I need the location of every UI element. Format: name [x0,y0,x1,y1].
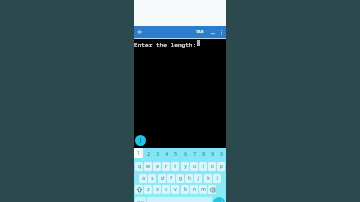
button[interactable]: 3 [153,150,161,159]
button[interactable]: Hide keyboard [208,26,217,38]
button[interactable]: f [167,174,175,183]
button[interactable]: l [213,174,221,183]
staticText: 5 [174,151,177,158]
button[interactable]: w [144,162,152,171]
staticText: g [179,175,182,182]
button[interactable]: v [171,185,179,194]
button[interactable]: n [190,185,198,194]
staticText: b [184,186,187,193]
staticText: 9 [211,151,214,158]
button[interactable]: u [190,162,198,171]
button[interactable]: j [194,174,202,183]
button[interactable]: Back [134,26,146,38]
button[interactable] [135,150,143,159]
button[interactable]: 1 [134,148,143,158]
button[interactable]: o [208,162,216,171]
button[interactable]: i [199,162,207,171]
staticText: ?123 [137,200,145,202]
button[interactable] [135,185,143,194]
staticText: t [174,163,176,170]
staticText: 3 [156,151,159,158]
staticText: f [170,175,172,182]
button[interactable]: 2 [144,150,152,159]
staticText: x [156,186,159,193]
staticText: v [174,186,177,193]
staticText: k [207,175,210,182]
staticText: q [138,163,141,170]
button[interactable]: More options [217,26,225,38]
button[interactable]: TAB [195,26,205,38]
button[interactable]: z [144,185,152,194]
staticText: 7 [193,151,196,158]
button[interactable]: e [153,162,161,171]
button[interactable]: 5 [171,150,179,159]
button[interactable]: q [135,162,143,171]
button[interactable]: Enter [213,197,225,202]
staticText: 2 [147,151,150,158]
staticText: i [202,163,204,170]
button[interactable]: 8 [199,150,207,159]
button[interactable]: Backspace [208,185,216,194]
button[interactable]: c [162,185,170,194]
button[interactable]: k [204,174,212,183]
staticText: Enter the length: [134,40,197,48]
staticText: l [216,175,218,182]
button[interactable]: a [139,174,147,183]
button[interactable] [208,185,216,194]
staticText: s [151,175,154,182]
button[interactable]: 0 [217,150,225,159]
button[interactable]: 9 [208,150,216,159]
button[interactable]: p [217,162,225,171]
button[interactable]: 6 [181,150,189,159]
button[interactable]: m [199,185,207,194]
staticText: 4 [165,151,168,158]
staticText: 0 [220,151,223,158]
staticText: o [211,163,214,170]
staticText: j [197,175,199,182]
staticText: TAB [196,29,204,35]
button[interactable]: d [158,174,166,183]
staticText: y [184,163,187,170]
staticText: r [165,163,167,170]
button[interactable]: x [153,185,161,194]
button[interactable]: r [162,162,170,171]
button[interactable]: ?123 [135,197,146,202]
button[interactable]: y [181,162,189,171]
staticText: n [193,186,196,193]
staticText: w [146,163,150,170]
staticText: e [156,163,159,170]
button[interactable]: Text selection handle [135,135,146,146]
button[interactable]: b [181,185,189,194]
staticText: c [165,186,168,193]
button[interactable]: g [176,174,184,183]
staticText: h [188,175,191,182]
staticText: m [201,186,206,193]
staticText: p [220,163,223,170]
staticText: 6 [184,151,187,158]
button[interactable]: Shift [135,185,143,194]
staticText: 8 [202,151,205,158]
staticText: a [142,175,145,182]
staticText: 1 [137,150,140,157]
staticText: z [147,186,150,193]
button[interactable]: 7 [190,150,198,159]
staticText: d [161,175,164,182]
button[interactable]: s [148,174,156,183]
button[interactable]: t [171,162,179,171]
button[interactable]: h [185,174,193,183]
button[interactable]: 4 [162,150,170,159]
staticText: u [193,163,196,170]
